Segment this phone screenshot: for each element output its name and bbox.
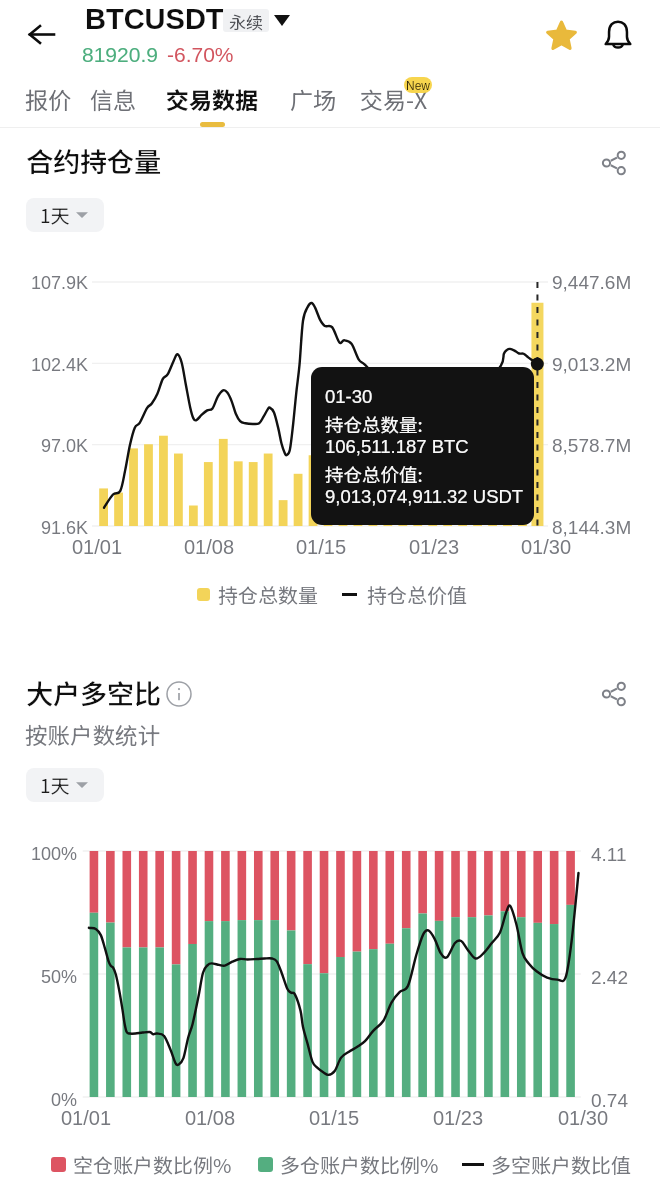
- staticText: 01/15: [286, 536, 356, 558]
- button[interactable]: Price alerts: [594, 11, 642, 59]
- staticText: 01/23: [399, 536, 469, 558]
- staticText: 交易-X: [360, 82, 428, 115]
- staticText: 50%: [0, 967, 77, 987]
- button[interactable]: Share: [592, 141, 636, 185]
- staticText: 0.74: [591, 1090, 628, 1111]
- staticText: 多仓账户数比例%: [280, 1150, 439, 1179]
- button[interactable]: Add to favourites: [537, 11, 585, 59]
- staticText: 持仓总价值: [367, 580, 467, 609]
- staticText: 多空账户数比值: [491, 1150, 631, 1179]
- staticText: 9,447.6M: [552, 272, 632, 293]
- staticText: 1天: [40, 771, 70, 799]
- staticText: New: [406, 79, 431, 92]
- staticText: 持仓总数量: [218, 580, 318, 609]
- staticText: 01/30: [511, 536, 581, 558]
- staticText: 01/01: [62, 536, 132, 558]
- staticText: 106,511.187 BTC: [325, 436, 469, 457]
- staticText: 01/23: [423, 1107, 493, 1129]
- staticText: 交易数据: [166, 82, 258, 115]
- staticText: BTCUSDT: [85, 3, 224, 35]
- staticText: 01/30: [548, 1107, 618, 1129]
- staticText: 100%: [0, 844, 77, 864]
- staticText: 0%: [0, 1090, 77, 1110]
- staticText: 信息: [90, 82, 136, 115]
- staticText: 8,578.7M: [552, 435, 632, 456]
- button[interactable]: Back: [16, 9, 67, 60]
- button[interactable]: 交易-X: [349, 76, 439, 121]
- staticText: 空仓账户数比例%: [73, 1150, 232, 1179]
- staticText: 2.42: [591, 967, 628, 988]
- staticText: 1天: [40, 201, 70, 229]
- button[interactable]: 1天: [26, 768, 104, 802]
- staticText: 81920.9: [82, 43, 158, 66]
- staticText: 广场: [290, 82, 336, 115]
- staticText: 01-30: [325, 386, 373, 407]
- staticText: 持仓总价值:: [325, 461, 423, 488]
- staticText: 102.4K: [0, 355, 88, 375]
- staticText: 4.11: [591, 844, 627, 865]
- staticText: 01/15: [299, 1107, 369, 1129]
- staticText: 91.6K: [0, 518, 88, 538]
- staticText: 9,013.2M: [552, 354, 632, 375]
- staticText: 107.9K: [0, 273, 88, 293]
- button[interactable]: Share: [592, 672, 636, 716]
- button[interactable]: 交易数据: [155, 76, 269, 121]
- staticText: 8,144.3M: [552, 517, 632, 538]
- staticText: -6.70%: [167, 43, 234, 66]
- button[interactable]: 报价: [14, 76, 82, 121]
- staticText: 9,013,074,911.32 USDT: [325, 486, 524, 507]
- staticText: 01/08: [174, 536, 244, 558]
- staticText: 97.0K: [0, 436, 88, 456]
- staticText: 按账户数统计: [25, 718, 161, 751]
- staticText: 01/01: [51, 1107, 121, 1129]
- staticText: 报价: [25, 82, 71, 115]
- staticText: 永续: [229, 9, 263, 32]
- staticText: 合约持仓量: [26, 141, 161, 180]
- button[interactable]: 信息: [79, 76, 147, 121]
- staticText: 01/08: [175, 1107, 245, 1129]
- staticText: 持仓总数量:: [325, 411, 423, 438]
- staticText: 大户多空比: [26, 673, 161, 712]
- button[interactable]: 1天: [26, 198, 104, 232]
- button[interactable]: 广场: [279, 76, 347, 121]
